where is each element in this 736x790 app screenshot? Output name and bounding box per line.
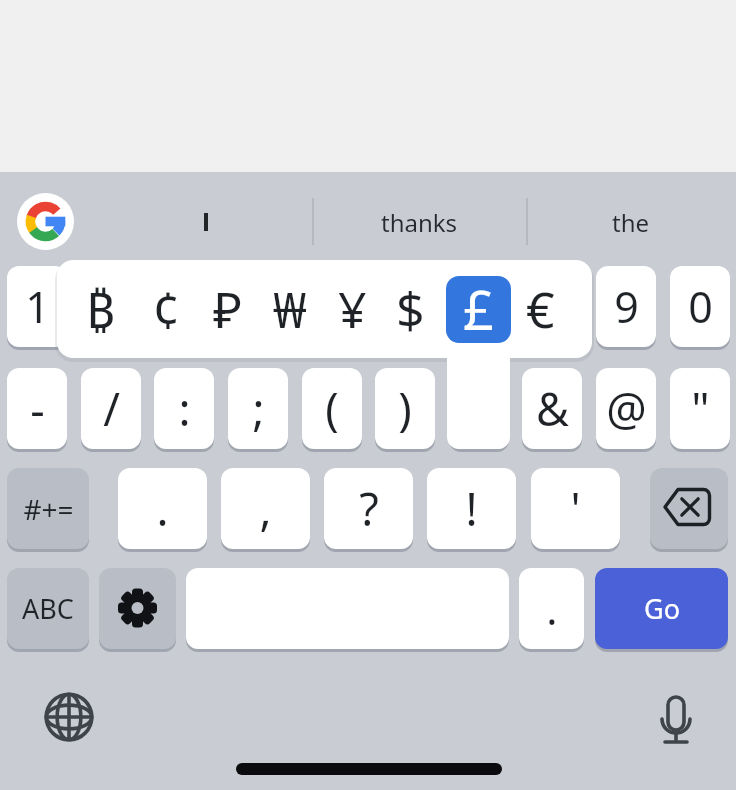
button[interactable]: : [154,368,214,449]
staticText: & [536,378,569,439]
staticText: ; [252,378,265,439]
staticText: 0 [688,277,713,336]
staticText: ABC [22,590,74,627]
button[interactable]: £ [447,261,509,357]
staticText: 8 [540,277,565,336]
button[interactable]: ) [375,368,435,449]
button[interactable]: ' [531,468,620,549]
staticText: @ [606,378,647,439]
staticText: ? [359,478,379,539]
staticText: ₿ [86,275,115,343]
button[interactable]: . [519,568,584,649]
button[interactable] [99,568,176,649]
staticText: thanks [381,206,458,239]
staticText: ( [325,378,339,439]
button[interactable] [652,695,700,743]
staticText: 7 [467,277,492,336]
button[interactable] [17,193,74,250]
button[interactable]: 8 [522,266,582,347]
button[interactable] [449,368,509,449]
button[interactable]: the [531,194,731,250]
button[interactable]: @ [596,368,656,449]
button[interactable] [155,196,255,248]
staticText: the [612,206,650,239]
button[interactable]: " [670,368,730,449]
staticText: € [526,275,555,343]
button[interactable]: 0 [670,266,730,347]
staticText: : [178,378,191,439]
button[interactable]: 6 [375,266,435,347]
button[interactable]: 1 [7,266,67,347]
button[interactable]: ¢ [135,261,197,357]
staticText: Go [644,590,680,627]
staticText: ₽ [213,275,243,343]
staticText: 2 [99,277,124,336]
button[interactable]: & [522,368,582,449]
button[interactable] [45,693,93,741]
button[interactable]: ₩ [259,261,321,357]
button[interactable]: ? [324,468,413,549]
button[interactable]: € [509,261,571,357]
button[interactable]: - [7,368,67,449]
button[interactable] [186,568,509,649]
button[interactable]: ABC [7,568,89,649]
staticText: . [546,580,558,637]
staticText: / [103,378,120,439]
button[interactable]: ; [228,368,288,449]
staticText: ₩ [273,275,307,343]
staticText: ¥ [338,275,367,343]
staticText: 1 [25,277,50,336]
button[interactable]: ¥ [321,261,383,357]
button[interactable] [650,468,728,549]
button[interactable]: / [81,368,141,449]
staticText: ) [398,378,412,439]
button[interactable]: ! [427,468,516,549]
button[interactable]: 4 [228,266,288,347]
button[interactable]: #+= [7,468,89,549]
button[interactable]: ₿ [69,261,131,357]
staticText: ! [465,478,478,539]
button[interactable]: ( [302,368,362,449]
button[interactable]: 5 [302,266,362,347]
button[interactable]: , [221,468,310,549]
button[interactable]: . [118,468,207,549]
staticText: #+= [23,490,74,528]
staticText: £ [463,272,494,346]
staticText: ' [570,478,581,539]
staticText: . [156,478,169,539]
button[interactable]: ₽ [197,261,259,357]
staticText: 3 [172,277,197,336]
button[interactable]: thanks [319,194,519,250]
staticText: 6 [393,277,418,336]
button[interactable] [446,276,511,343]
staticText: - [30,378,45,439]
staticText: 9 [614,277,639,336]
staticText: $ [396,275,425,343]
button[interactable]: 2 [81,266,141,347]
button[interactable]: 3 [154,266,214,347]
button[interactable]: 9 [596,266,656,347]
staticText: 5 [320,277,345,336]
staticText: , [259,478,272,539]
staticText: ¢ [152,275,181,343]
button[interactable]: Go [595,568,728,649]
staticText: " [691,378,710,439]
button[interactable]: $ [379,261,441,357]
button[interactable]: 7 [449,266,509,347]
